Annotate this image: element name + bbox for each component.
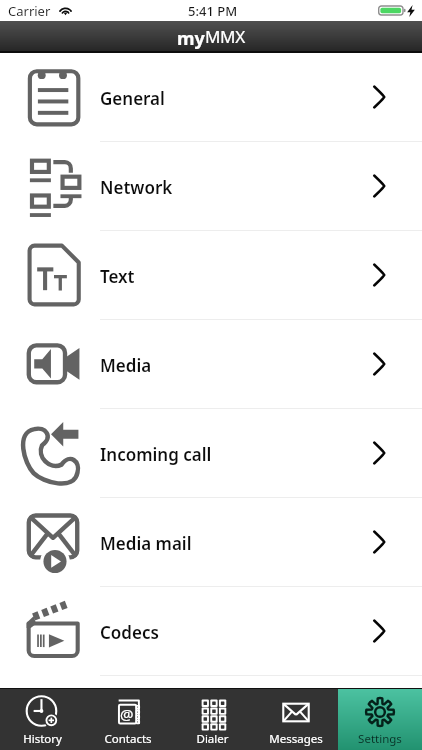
staticText: Media [100, 354, 152, 377]
staticText: Dialer [196, 731, 229, 747]
staticText: 5:41 PM [188, 2, 238, 20]
staticText: Settings [358, 731, 402, 747]
button[interactable]: Network [0, 142, 422, 231]
staticText: Media mail [100, 532, 192, 555]
staticText: MMX [205, 25, 245, 48]
button[interactable]: Codecs [0, 587, 422, 676]
button[interactable]: General [0, 53, 422, 142]
staticText: General [100, 87, 165, 110]
button[interactable]: Text [0, 231, 422, 320]
button[interactable]: Media mail [0, 498, 422, 587]
staticText: Network [100, 176, 173, 199]
button[interactable]: Messages [254, 689, 338, 750]
staticText: @ [120, 704, 134, 724]
staticText: Incoming call [100, 443, 212, 466]
staticText: Contacts [104, 731, 152, 747]
staticText: Codecs [100, 621, 159, 644]
button[interactable]: @ [85, 689, 170, 750]
staticText: Text [100, 265, 135, 288]
button[interactable]: Media [0, 320, 422, 409]
staticText: Carrier [8, 2, 51, 20]
button[interactable]: Settings [338, 689, 422, 750]
button[interactable]: History [0, 689, 85, 750]
staticText: my [177, 26, 205, 51]
button[interactable]: Dialer [170, 689, 254, 750]
staticText: Messages [269, 731, 323, 747]
staticText: History [23, 731, 62, 747]
button[interactable]: Incoming call [0, 409, 422, 498]
